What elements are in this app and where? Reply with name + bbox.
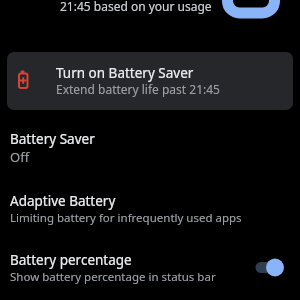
staticText: Off xyxy=(10,148,30,166)
staticText: Show battery percentage in status bar xyxy=(10,269,216,285)
staticText: Turn on Battery Saver xyxy=(56,64,194,82)
staticText: 21:45 based on your usage xyxy=(60,0,212,14)
staticText: Extend battery life past 21:45 xyxy=(56,81,220,97)
staticText: Battery percentage xyxy=(10,251,132,269)
button[interactable]: Battery Saver xyxy=(0,122,300,170)
staticText: Limiting battery for infrequently used a… xyxy=(10,210,242,226)
staticText: Battery Saver xyxy=(10,130,95,148)
button[interactable]: Turn on Battery Saver xyxy=(7,52,293,110)
staticText: Adaptive Battery xyxy=(10,192,116,210)
button[interactable]: Adaptive Battery xyxy=(0,183,300,230)
button[interactable]: Battery percentage xyxy=(0,243,300,293)
